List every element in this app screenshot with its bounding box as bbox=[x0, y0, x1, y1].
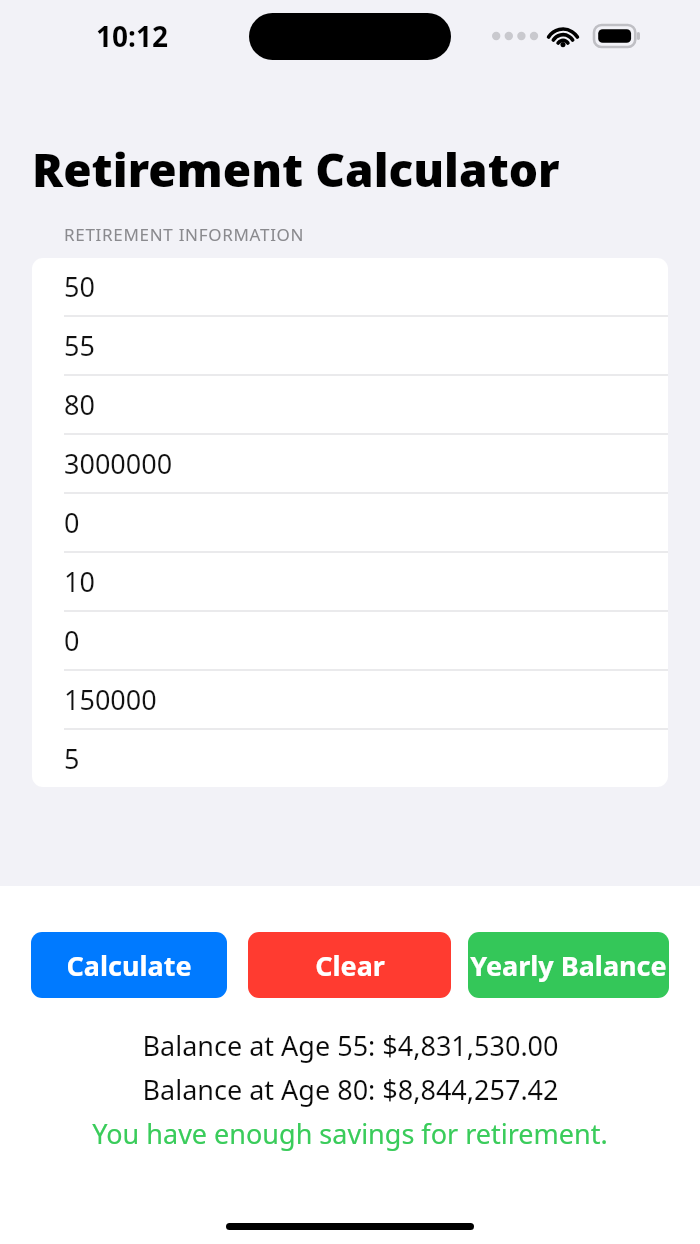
staticText: 3000000 bbox=[64, 445, 173, 482]
staticText: Balance at Age 80: $8,844,257.42 bbox=[142, 1071, 559, 1108]
staticText: RETIREMENT INFORMATION bbox=[64, 223, 305, 246]
staticText: 80 bbox=[64, 386, 95, 423]
button[interactable]: 80 bbox=[32, 376, 668, 433]
button[interactable]: 50 bbox=[32, 258, 668, 315]
staticText: 10 bbox=[64, 563, 95, 600]
button[interactable]: Clear bbox=[248, 932, 451, 998]
staticText: 0 bbox=[64, 504, 80, 541]
staticText: Clear bbox=[315, 947, 385, 984]
button[interactable]: 3000000 bbox=[32, 435, 668, 492]
staticText: 0 bbox=[64, 622, 80, 659]
button[interactable]: 10 bbox=[32, 553, 668, 610]
button[interactable]: Calculate bbox=[31, 932, 227, 998]
button[interactable]: 0 bbox=[32, 612, 668, 669]
staticText: 150000 bbox=[64, 681, 157, 718]
staticText: 55 bbox=[64, 327, 95, 364]
staticText: Balance at Age 55: $4,831,530.00 bbox=[142, 1027, 559, 1064]
staticText: Calculate bbox=[66, 947, 192, 984]
staticText: Retirement Calculator bbox=[32, 138, 560, 201]
button[interactable]: 5 bbox=[32, 730, 668, 787]
button[interactable]: 55 bbox=[32, 317, 668, 374]
staticText: 5 bbox=[64, 740, 80, 777]
button[interactable]: 0 bbox=[32, 494, 668, 551]
staticText: Yearly Balance bbox=[470, 947, 667, 984]
staticText: You have enough savings for retirement. bbox=[92, 1115, 608, 1152]
staticText: 50 bbox=[64, 268, 95, 305]
button[interactable]: Yearly Balance bbox=[468, 932, 669, 998]
button[interactable]: 150000 bbox=[32, 671, 668, 728]
staticText: 10:12 bbox=[96, 17, 168, 55]
